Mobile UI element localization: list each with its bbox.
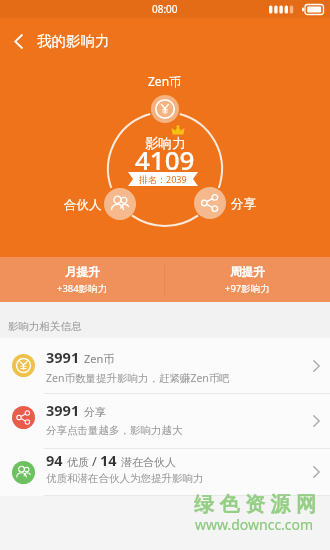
staticText: +97影响力 bbox=[225, 282, 270, 295]
staticText: Zen币 bbox=[148, 73, 182, 89]
staticText: 3991 bbox=[46, 400, 80, 420]
button[interactable]: 3991 bbox=[0, 338, 330, 393]
staticText: 周提升 bbox=[230, 265, 265, 279]
button[interactable] bbox=[151, 95, 179, 123]
staticText: 潜在合伙人 bbox=[121, 455, 176, 469]
staticText: 14 bbox=[100, 450, 117, 470]
button[interactable]: 3991 bbox=[0, 394, 330, 448]
button[interactable]: 周提升 bbox=[165, 257, 330, 302]
button[interactable] bbox=[194, 187, 226, 219]
staticText: 3991 bbox=[46, 347, 80, 367]
staticText: 排名：2039 bbox=[139, 173, 187, 185]
staticText: 优质和潜在合伙人为您提升影响力 bbox=[46, 472, 204, 485]
button[interactable]: 94 bbox=[0, 449, 330, 495]
staticText: www.downcc.com bbox=[195, 515, 314, 534]
staticText: Zen币 bbox=[84, 351, 115, 366]
button[interactable]: 我的影响力 bbox=[0, 32, 110, 50]
staticText: 合伙人 bbox=[64, 197, 102, 213]
staticText: +384影响力 bbox=[57, 282, 108, 295]
staticText: Zen币数量提升影响力，赶紧赚Zen币吧 bbox=[46, 371, 230, 385]
button[interactable]: 月提升 bbox=[0, 257, 164, 302]
staticText: 分享 bbox=[84, 405, 106, 419]
staticText: 分享 bbox=[231, 196, 256, 212]
staticText: 分享点击量越多，影响力越大 bbox=[46, 424, 183, 437]
staticText: 影响力相关信息 bbox=[8, 320, 82, 333]
staticText: / bbox=[92, 452, 97, 470]
staticText: 月提升 bbox=[65, 265, 100, 279]
button[interactable] bbox=[104, 188, 136, 220]
staticText: 我的影响力 bbox=[37, 32, 110, 50]
staticText: 08:00 bbox=[152, 2, 178, 16]
staticText: 94 bbox=[46, 450, 63, 470]
staticText: 绿色资源网 bbox=[194, 492, 322, 517]
staticText: 优质 bbox=[67, 455, 89, 469]
staticText: 影响力 bbox=[145, 135, 186, 152]
staticText: 4109 bbox=[135, 142, 195, 177]
